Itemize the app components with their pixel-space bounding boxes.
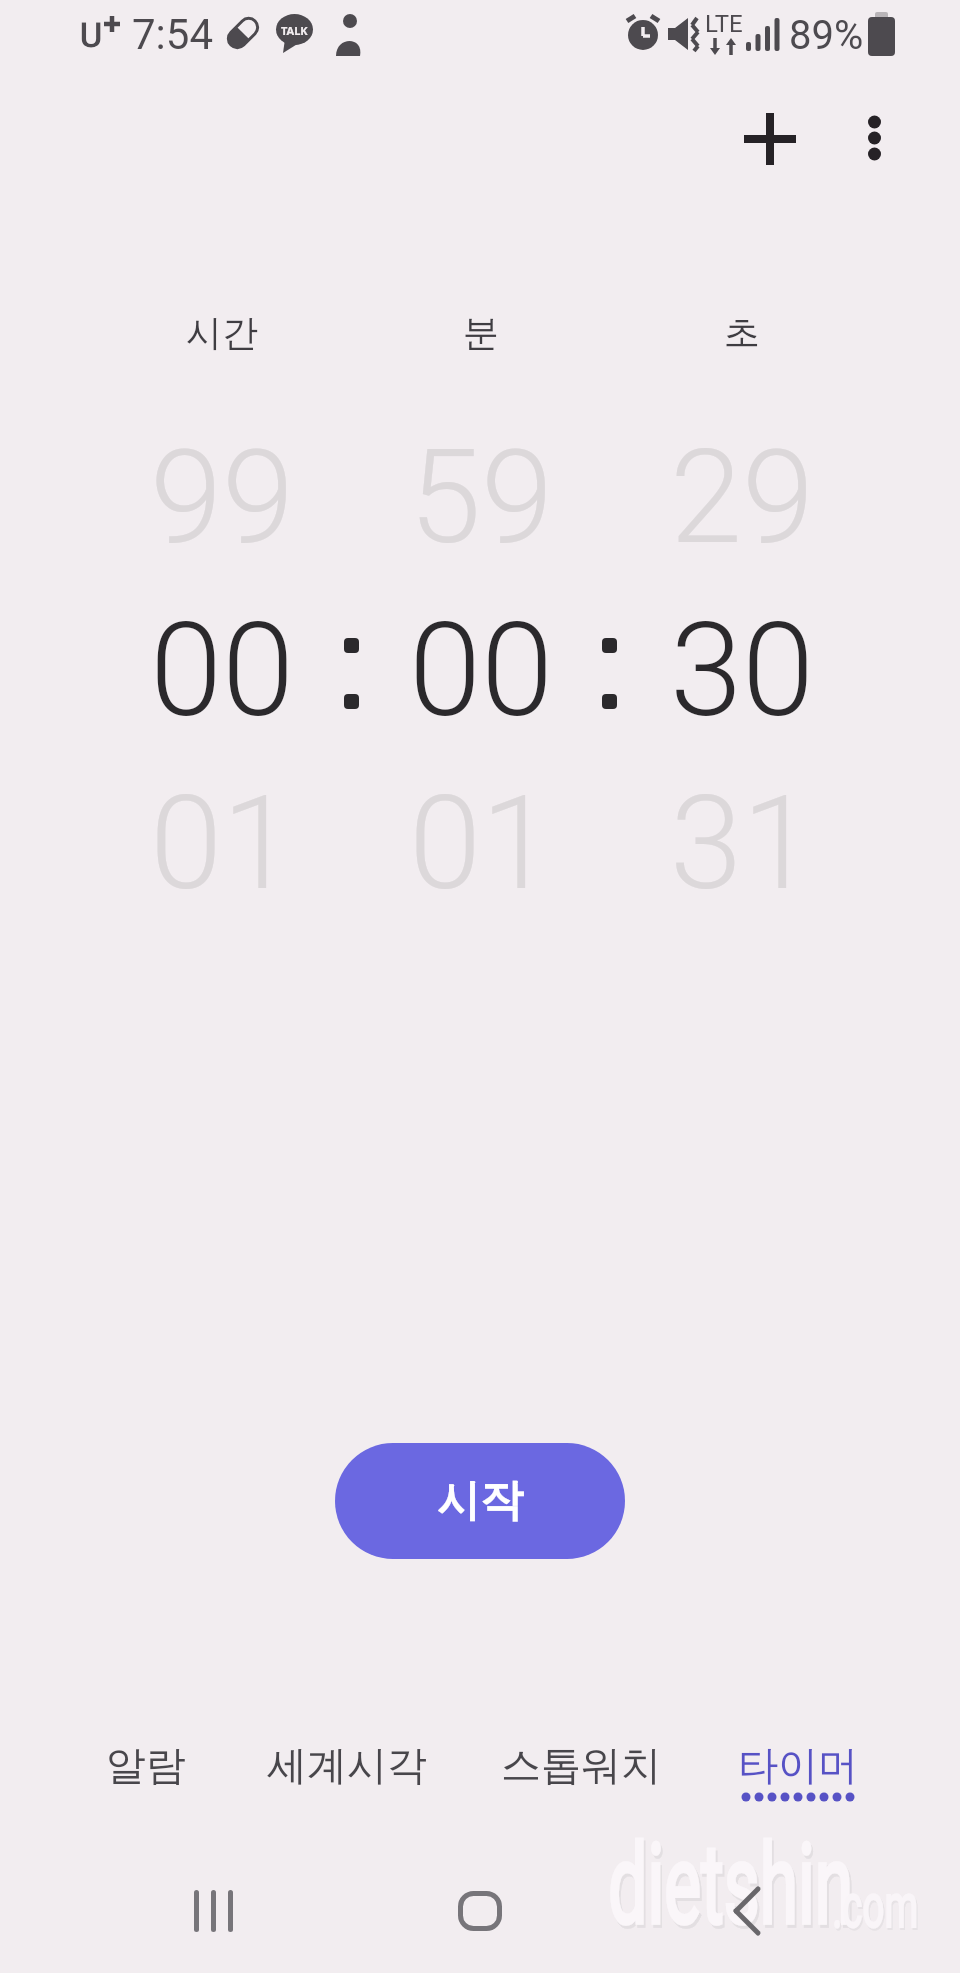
button[interactable]: 타이머 (708, 1720, 888, 1810)
staticText: 29 (670, 421, 815, 573)
staticText: TALK (281, 23, 308, 38)
staticText: 89% (789, 12, 864, 59)
staticText: .com (832, 1869, 918, 1942)
button[interactable] (730, 99, 810, 179)
staticText: 시작 (437, 1474, 523, 1528)
staticText: dietshin (610, 1822, 856, 1953)
button[interactable]: 알람 (56, 1720, 236, 1810)
staticText: 7:54 (132, 10, 213, 59)
staticText: dietshin (608, 1819, 854, 1950)
staticText: 01 (150, 767, 295, 919)
button[interactable] (677, 1851, 817, 1971)
staticText: 세계시각 (267, 1740, 427, 1790)
button[interactable] (834, 98, 914, 178)
button[interactable]: 30 (542, 570, 942, 770)
staticText: 시간 (186, 310, 258, 355)
staticText: 초 (724, 310, 760, 355)
staticText: 30 (670, 594, 815, 746)
staticText: LTE (705, 10, 743, 38)
button[interactable]: 00 (22, 570, 422, 770)
staticText: 01 (409, 767, 554, 919)
button[interactable]: 스톱워치 (471, 1720, 691, 1810)
staticText: 알람 (106, 1740, 186, 1790)
button[interactable] (410, 1851, 550, 1971)
staticText: 59 (409, 421, 554, 573)
button[interactable]: 세계시각 (237, 1720, 457, 1810)
staticText: .com (833, 1871, 920, 1944)
staticText: 31 (670, 767, 815, 919)
button[interactable]: 시작 (335, 1443, 625, 1559)
staticText: 99 (150, 421, 295, 573)
button[interactable]: 00 (281, 570, 681, 770)
staticText: 00 (150, 594, 295, 746)
staticText: 스톱워치 (501, 1740, 661, 1790)
staticText: U (80, 15, 103, 55)
staticText: 00 (409, 594, 554, 746)
staticText: 분 (463, 310, 499, 355)
staticText: 타이머 (738, 1740, 858, 1790)
button[interactable] (143, 1851, 283, 1971)
